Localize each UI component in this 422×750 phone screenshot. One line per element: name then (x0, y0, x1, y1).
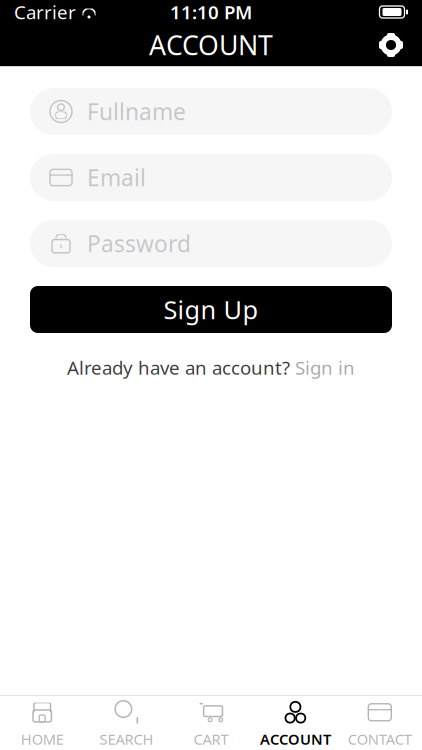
staticText: Email (87, 162, 146, 192)
button[interactable]: Email (30, 154, 392, 201)
button[interactable]: ACCOUNT (253, 691, 338, 750)
staticText: ACCOUNT (149, 27, 273, 63)
staticText: Sign Up (163, 293, 258, 326)
staticText: Sign in (295, 355, 355, 380)
button[interactable]: Password (30, 220, 392, 267)
staticText: Already have an account? (67, 355, 290, 380)
button[interactable]: Sign Up (30, 286, 392, 333)
staticText: Fullname (87, 96, 186, 126)
staticText: SEARCH (100, 729, 154, 749)
staticText: Carrier (14, 0, 76, 24)
button[interactable]: Already have an account? (57, 351, 365, 384)
staticText: Password (87, 228, 191, 258)
button[interactable]: CONTACT (338, 691, 422, 750)
button[interactable]: Fullname (30, 88, 392, 135)
staticText: HOME (21, 729, 64, 749)
button[interactable]: SEARCH (84, 691, 169, 750)
staticText: 11:10 PM (170, 0, 252, 24)
button[interactable]: Settings (368, 24, 414, 66)
staticText: CONTACT (348, 729, 412, 749)
button[interactable]: HOME (0, 691, 84, 750)
staticText: CART (193, 729, 228, 749)
button[interactable]: CART (169, 691, 253, 750)
staticText: ACCOUNT (260, 729, 331, 749)
